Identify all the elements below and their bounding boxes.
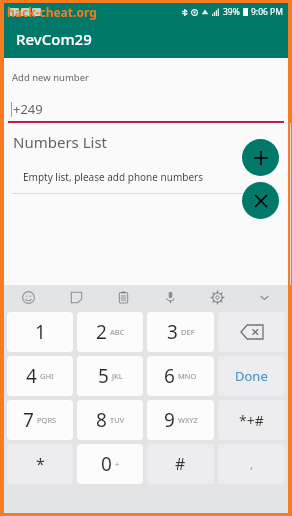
- button[interactable]: 2: [77, 312, 143, 352]
- staticText: DEF: [181, 327, 195, 337]
- button[interactable]: Settings: [194, 285, 241, 310]
- button[interactable]: *+#: [218, 400, 285, 440]
- staticText: WXYZ: [178, 415, 198, 425]
- staticText: ,: [250, 457, 253, 472]
- staticText: 6: [164, 363, 175, 389]
- button[interactable]: 8: [77, 400, 143, 440]
- button[interactable]: 3: [147, 312, 214, 352]
- staticText: hack-cheat.org: [7, 4, 97, 20]
- button[interactable]: Backspace: [218, 312, 285, 352]
- button[interactable]: *: [7, 444, 73, 484]
- button[interactable]: Clear list: [242, 182, 279, 219]
- button[interactable]: Stickers: [52, 285, 100, 310]
- button[interactable]: Done: [218, 356, 285, 396]
- button[interactable]: 0: [77, 444, 143, 484]
- staticText: 39%: [223, 6, 240, 18]
- button[interactable]: Add number: [242, 139, 279, 176]
- staticText: 4: [26, 363, 37, 389]
- staticText: +249: [13, 100, 43, 118]
- button[interactable]: Voice input: [147, 285, 194, 310]
- button[interactable]: 1: [7, 312, 73, 352]
- staticText: TUV: [110, 415, 125, 425]
- button[interactable]: 5: [77, 356, 143, 396]
- staticText: +: [115, 459, 120, 469]
- staticText: Numbers List: [13, 132, 107, 152]
- staticText: 3: [167, 319, 178, 345]
- button[interactable]: #: [147, 444, 214, 484]
- staticText: *: [36, 453, 45, 475]
- button[interactable]: Collapse: [241, 285, 288, 310]
- button[interactable]: Clipboard: [100, 285, 147, 310]
- staticText: MNO: [178, 371, 197, 381]
- staticText: 9: [164, 407, 175, 433]
- staticText: Done: [235, 367, 268, 385]
- staticText: ABC: [110, 327, 125, 337]
- staticText: #: [175, 453, 186, 475]
- staticText: 2: [96, 319, 107, 345]
- staticText: 7: [23, 407, 34, 433]
- staticText: RevCom29: [16, 29, 92, 49]
- staticText: Empty list, please add phone numbers: [23, 170, 203, 184]
- button[interactable]: 6: [147, 356, 214, 396]
- staticText: PQRS: [37, 415, 57, 425]
- button[interactable]: +249: [4, 99, 288, 119]
- staticText: *+#: [239, 411, 264, 430]
- button[interactable]: Emoji: [4, 285, 52, 310]
- staticText: 5: [98, 363, 109, 389]
- staticText: 1: [35, 319, 46, 345]
- staticText: GHI: [40, 371, 54, 381]
- staticText: 9:06 PM: [251, 6, 283, 18]
- staticText: Add new number: [12, 71, 89, 84]
- button[interactable]: 4: [7, 356, 73, 396]
- button[interactable]: 7: [7, 400, 73, 440]
- staticText: JKL: [112, 371, 123, 381]
- button[interactable]: 9: [147, 400, 214, 440]
- staticText: 0: [101, 451, 112, 477]
- staticText: 8: [96, 407, 107, 433]
